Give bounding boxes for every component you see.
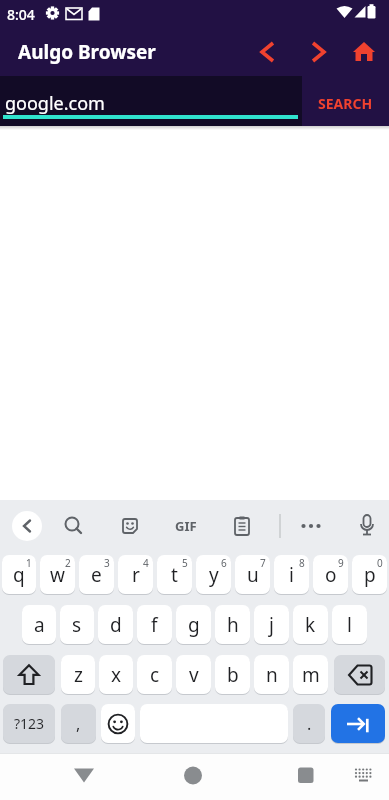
staticText: f [151, 612, 158, 638]
button[interactable]: p [352, 555, 387, 594]
staticText: r [132, 562, 140, 588]
button[interactable] [344, 32, 384, 72]
staticText: 9 [338, 556, 344, 570]
staticText: k [305, 612, 316, 638]
staticText: SEARCH [318, 94, 373, 113]
button[interactable] [12, 511, 42, 541]
button[interactable]: s [60, 605, 94, 644]
staticText: 0 [377, 556, 383, 570]
button[interactable] [259, 753, 389, 800]
button[interactable]: ?123 [3, 704, 55, 743]
staticText: y [209, 562, 219, 588]
button[interactable]: a [22, 605, 56, 644]
button[interactable]: v [176, 655, 211, 694]
button[interactable]: f [137, 605, 172, 644]
button[interactable] [129, 753, 259, 800]
staticText: t [171, 562, 178, 588]
staticText: 6 [221, 556, 227, 570]
staticText: g [188, 612, 200, 638]
button[interactable]: h [215, 605, 250, 644]
staticText: z [74, 662, 83, 688]
staticText: 7 [260, 556, 266, 570]
staticText: u [247, 562, 259, 588]
staticText: l [347, 612, 352, 638]
button[interactable]: q [2, 555, 36, 594]
button[interactable]: , [61, 704, 96, 743]
staticText: q [13, 562, 25, 588]
button[interactable]: z [61, 655, 95, 694]
button[interactable] [331, 704, 385, 743]
button[interactable]: g [176, 605, 211, 644]
staticText: 3 [104, 556, 110, 570]
button[interactable]: c [137, 655, 172, 694]
button[interactable]: w [40, 555, 75, 594]
staticText: d [110, 612, 122, 638]
staticText: x [111, 662, 122, 688]
button[interactable]: SEARCH [302, 76, 389, 126]
button[interactable]: . [293, 704, 325, 743]
button[interactable]: x [99, 655, 133, 694]
staticText: Aulgo Browser [18, 39, 156, 65]
staticText: ?123 [14, 714, 45, 733]
staticText: 4 [143, 556, 149, 570]
button[interactable] [0, 753, 129, 800]
staticText: 2 [65, 556, 71, 570]
staticText: 5 [182, 556, 188, 570]
staticText: v [189, 662, 199, 688]
button[interactable]: t [157, 555, 192, 594]
staticText: n [266, 662, 278, 688]
staticText: s [72, 612, 82, 638]
button[interactable]: r [118, 555, 153, 594]
button[interactable]: j [254, 605, 289, 644]
staticText: a [34, 612, 45, 638]
staticText: j [269, 612, 274, 638]
button[interactable]: e [79, 555, 114, 594]
staticText: w [50, 562, 65, 588]
staticText: m [302, 662, 320, 688]
staticText: h [227, 612, 239, 638]
button[interactable] [334, 655, 385, 694]
button[interactable]: k [293, 605, 328, 644]
button[interactable] [3, 655, 55, 694]
button[interactable] [101, 704, 135, 743]
staticText: o [325, 562, 337, 588]
staticText: e [91, 562, 102, 588]
staticText: google.com [5, 91, 105, 116]
button[interactable]: i [274, 555, 309, 594]
button[interactable]: l [332, 605, 367, 644]
staticText: , [76, 713, 81, 735]
button[interactable]: o [313, 555, 348, 594]
staticText: c [150, 662, 160, 688]
button[interactable]: google.com [0, 76, 302, 126]
button[interactable] [299, 32, 339, 72]
button[interactable]: d [98, 605, 133, 644]
staticText: GIF [175, 517, 197, 535]
staticText: b [227, 662, 239, 688]
staticText: 1 [26, 556, 32, 570]
staticText: p [364, 562, 376, 588]
button[interactable]: m [293, 655, 328, 694]
staticText: . [307, 713, 312, 735]
staticText: 8:04 [7, 5, 35, 24]
button[interactable]: b [215, 655, 250, 694]
button[interactable]: n [254, 655, 289, 694]
staticText: i [289, 562, 294, 588]
button[interactable] [247, 32, 287, 72]
staticText: 8 [299, 556, 305, 570]
button[interactable]: y [196, 555, 231, 594]
button[interactable]: u [235, 555, 270, 594]
